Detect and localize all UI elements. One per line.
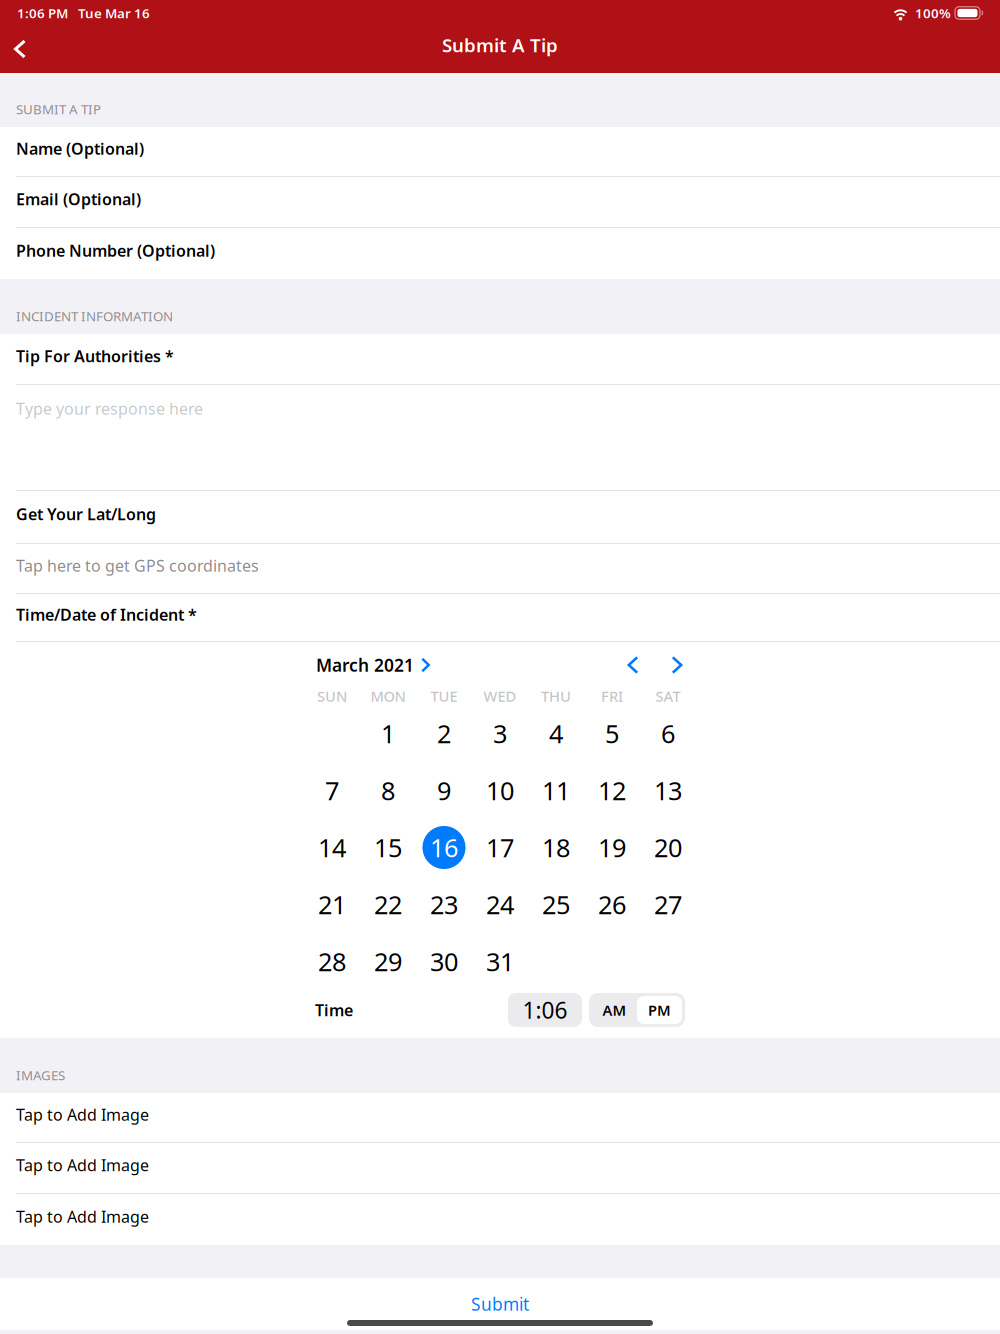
- button[interactable]: Next month: [661, 648, 693, 682]
- staticText: SUN: [317, 686, 347, 706]
- staticText: 7: [325, 774, 339, 807]
- staticText: MON: [370, 686, 405, 706]
- button[interactable]: 11: [528, 762, 584, 819]
- staticText: 24: [486, 888, 514, 921]
- staticText: 16: [430, 831, 458, 864]
- staticText: 10: [486, 774, 514, 807]
- button[interactable]: 1:06: [508, 993, 582, 1027]
- button[interactable]: 18: [528, 819, 584, 876]
- button[interactable]: 6: [640, 705, 696, 762]
- button[interactable]: 3: [472, 705, 528, 762]
- button[interactable]: 2: [416, 705, 472, 762]
- staticText: FRI: [601, 686, 623, 706]
- button[interactable]: 1: [360, 705, 416, 762]
- staticText: Time/Date of Incident *: [16, 604, 197, 625]
- staticText: 1:06: [522, 995, 567, 1025]
- button[interactable]: 15: [360, 819, 416, 876]
- staticText: 26: [598, 888, 626, 921]
- button[interactable]: 4: [528, 705, 584, 762]
- staticText: Tue Mar 16: [78, 4, 150, 22]
- staticText: 19: [598, 831, 626, 864]
- staticText: 25: [542, 888, 570, 921]
- staticText: INCIDENT INFORMATION: [16, 307, 173, 325]
- staticText: 13: [654, 774, 682, 807]
- staticText: 1: [381, 717, 395, 750]
- staticText: Type your response here: [16, 398, 203, 419]
- staticText: March 2021: [316, 653, 414, 676]
- button[interactable]: 24: [472, 876, 528, 933]
- button[interactable]: 30: [416, 933, 472, 990]
- button[interactable]: 26: [584, 876, 640, 933]
- button[interactable]: Name (Optional): [0, 127, 1000, 177]
- button[interactable]: 27: [640, 876, 696, 933]
- staticText: Tap to Add Image: [16, 1104, 149, 1125]
- button[interactable]: Tap to Add Image: [0, 1093, 1000, 1143]
- button[interactable]: Submit: [0, 1278, 1000, 1330]
- staticText: 100%: [915, 4, 951, 22]
- button[interactable]: 19: [584, 819, 640, 876]
- staticText: PM: [648, 1000, 671, 1020]
- button[interactable]: Tip For Authorities *: [0, 334, 1000, 385]
- button[interactable]: March 2021: [316, 648, 430, 682]
- button[interactable]: 14: [304, 819, 360, 876]
- button[interactable]: AM: [592, 996, 637, 1024]
- staticText: Tap to Add Image: [16, 1154, 149, 1176]
- button[interactable]: 31: [472, 933, 528, 990]
- staticText: Tip For Authorities *: [16, 345, 174, 367]
- button[interactable]: Email (Optional): [0, 177, 1000, 228]
- staticText: Submit A Tip: [442, 33, 558, 57]
- button[interactable]: PM: [637, 996, 682, 1024]
- button[interactable]: Tap to Add Image: [0, 1194, 1000, 1245]
- staticText: Time: [315, 999, 353, 1021]
- button[interactable]: 8: [360, 762, 416, 819]
- staticText: 30: [430, 945, 458, 978]
- button[interactable]: Previous month: [617, 648, 649, 682]
- staticText: AM: [602, 1000, 626, 1020]
- staticText: SAT: [655, 686, 680, 706]
- staticText: 15: [374, 831, 402, 864]
- staticText: 18: [542, 831, 570, 864]
- staticText: 22: [374, 888, 402, 921]
- button[interactable]: 12: [584, 762, 640, 819]
- staticText: Name (Optional): [16, 138, 144, 159]
- button[interactable]: Get Your Lat/Long: [0, 491, 1000, 544]
- button[interactable]: Tap to Add Image: [0, 1143, 1000, 1194]
- staticText: 31: [486, 945, 514, 978]
- staticText: 1:06 PM: [17, 4, 68, 22]
- button[interactable]: 5: [584, 705, 640, 762]
- button[interactable]: 22: [360, 876, 416, 933]
- button[interactable]: 7: [304, 762, 360, 819]
- staticText: 29: [374, 945, 402, 978]
- button[interactable]: Tap here to get GPS coordinates: [0, 544, 1000, 594]
- staticText: 4: [549, 717, 563, 750]
- button[interactable]: 20: [640, 819, 696, 876]
- staticText: IMAGES: [16, 1066, 65, 1084]
- staticText: 27: [654, 888, 682, 921]
- staticText: 2: [437, 717, 451, 750]
- staticText: Email (Optional): [16, 188, 141, 210]
- button[interactable]: Time/Date of Incident *: [0, 594, 1000, 642]
- button[interactable]: 23: [416, 876, 472, 933]
- staticText: Get Your Lat/Long: [16, 503, 156, 525]
- button[interactable]: 16: [416, 819, 472, 876]
- staticText: 5: [605, 717, 619, 750]
- button[interactable]: 17: [472, 819, 528, 876]
- button[interactable]: 21: [304, 876, 360, 933]
- button[interactable]: 13: [640, 762, 696, 819]
- staticText: 28: [318, 945, 346, 978]
- button[interactable]: Phone Number (Optional): [0, 228, 1000, 279]
- staticText: Tap to Add Image: [16, 1206, 149, 1227]
- button[interactable]: Back: [7, 21, 33, 68]
- staticText: 9: [437, 774, 451, 807]
- staticText: Phone Number (Optional): [16, 240, 215, 261]
- button[interactable]: 9: [416, 762, 472, 819]
- staticText: 20: [654, 831, 682, 864]
- button[interactable]: Type your response here: [0, 385, 1000, 491]
- staticText: TUE: [430, 686, 457, 706]
- staticText: 21: [318, 888, 346, 921]
- button[interactable]: 28: [304, 933, 360, 990]
- staticText: 11: [542, 774, 570, 807]
- button[interactable]: 25: [528, 876, 584, 933]
- button[interactable]: 29: [360, 933, 416, 990]
- button[interactable]: 10: [472, 762, 528, 819]
